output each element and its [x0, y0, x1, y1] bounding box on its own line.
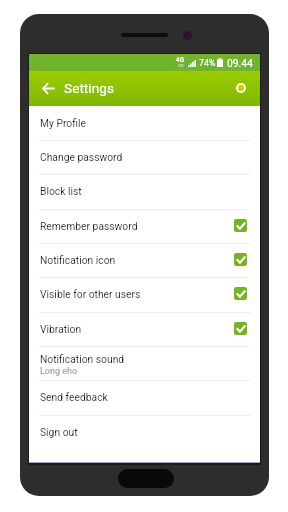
button[interactable]: Remember password	[29, 209, 260, 243]
staticText: Settings	[64, 80, 114, 96]
staticText: Notification icon	[40, 254, 116, 266]
button[interactable]: Vibration	[29, 312, 260, 346]
button[interactable]: My Profile	[29, 106, 260, 140]
button[interactable]: Block list	[29, 174, 260, 208]
staticText: Block list	[40, 185, 82, 197]
staticText: Notification sound	[40, 353, 125, 365]
button[interactable]: Options	[232, 79, 250, 97]
staticText: 09.44	[227, 57, 253, 69]
button[interactable]: Notification icon	[29, 243, 260, 277]
staticText: My Profile	[40, 117, 86, 129]
staticText: Sign out	[40, 426, 78, 438]
button[interactable]: Visible for other users	[29, 277, 260, 311]
staticText: 74%	[199, 58, 216, 68]
staticText: Remember password	[40, 220, 138, 232]
staticText: Visible for other users	[40, 288, 141, 300]
staticText: Change password	[40, 151, 123, 163]
button[interactable]: Sign out	[29, 415, 260, 449]
button[interactable]: Send feedback	[29, 380, 260, 414]
staticText: 4G	[176, 56, 185, 64]
staticText: Vibration	[40, 323, 82, 335]
button[interactable]: Change password	[29, 140, 260, 174]
button[interactable]: Back	[36, 76, 60, 100]
staticText: Long eho	[40, 366, 78, 377]
staticText: Send feedback	[40, 391, 108, 403]
staticText: LTE	[178, 64, 184, 68]
button[interactable]: Notification sound	[29, 346, 260, 380]
